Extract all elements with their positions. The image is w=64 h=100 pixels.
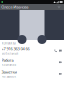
- staticText: +7 916 363 04 66: [2, 46, 30, 51]
- staticText: Нет заметок: [2, 75, 16, 78]
- button[interactable]: +7 916 363 04 66: [0, 45, 64, 56]
- staticText: Заметки: [2, 69, 17, 75]
- staticText: КОНТАКТЫ: [2, 42, 16, 45]
- staticText: мобильный: [2, 52, 19, 55]
- button[interactable]: Работа: [0, 56, 64, 68]
- button[interactable]: Заметки: [0, 68, 64, 80]
- button[interactable]: Add to favourites: [56, 4, 62, 10]
- staticText: Компания: [2, 63, 17, 67]
- staticText: Работа: [2, 58, 14, 63]
- staticText: Олеся Иванова: [1, 4, 28, 10]
